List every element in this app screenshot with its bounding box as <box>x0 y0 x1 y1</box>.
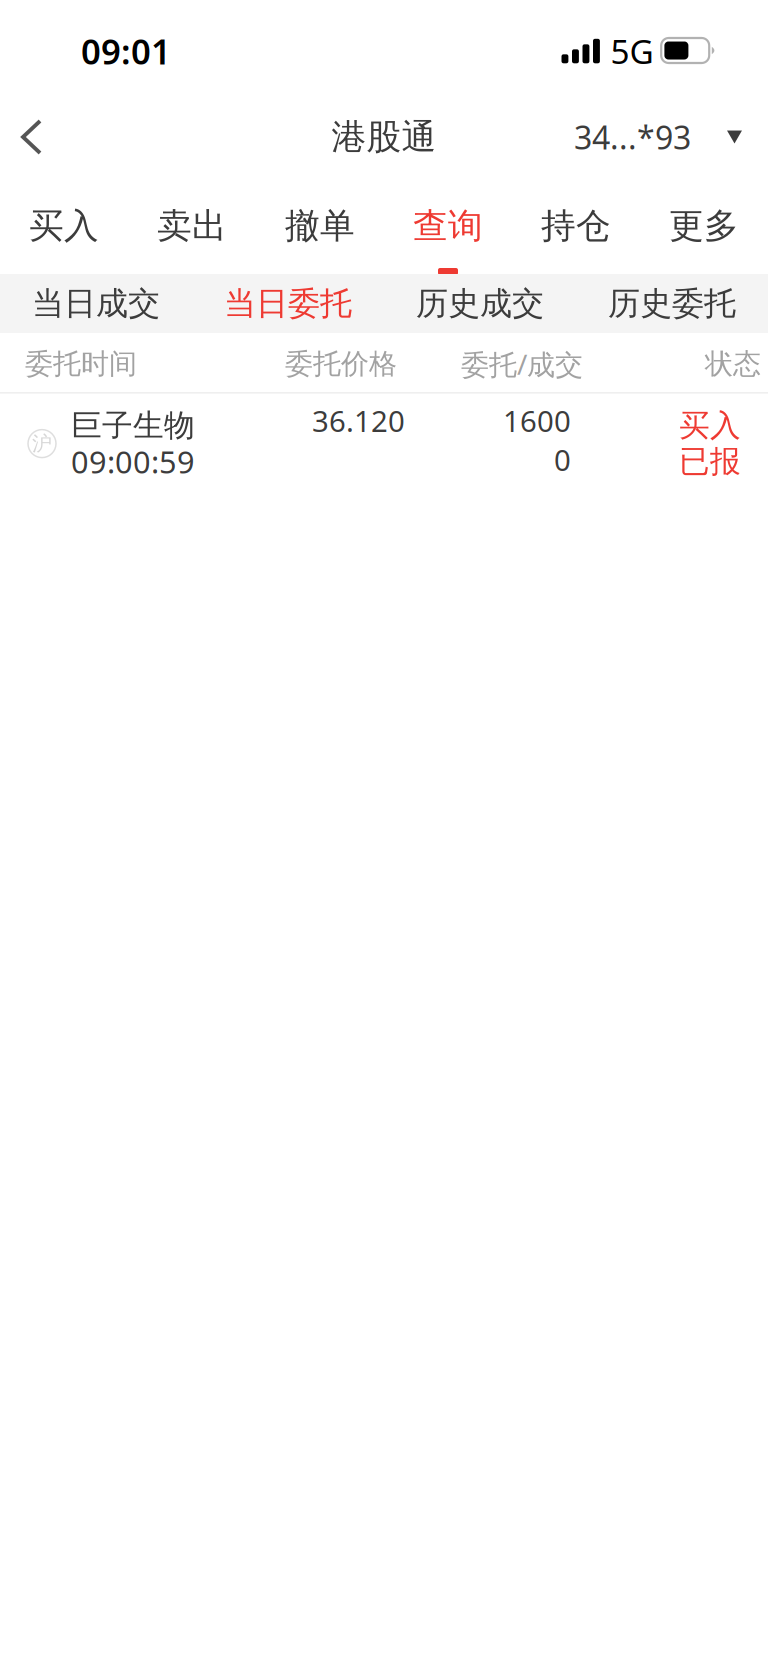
staticText: 巨子生物 <box>71 407 195 444</box>
button[interactable]: 返回 <box>3 106 77 168</box>
button[interactable]: 巨子生物 09:00:59 买入 已报 <box>0 394 768 502</box>
staticText: 历史成交 <box>416 284 544 323</box>
staticText: 已报 <box>679 443 741 480</box>
staticText: 34...*93 <box>574 116 691 158</box>
staticText: 委托价格 <box>285 347 397 381</box>
staticText: 1600 <box>503 401 571 440</box>
staticText: 09:00:59 <box>71 441 195 482</box>
staticText: 买入 <box>679 407 741 444</box>
button[interactable]: 撤单 <box>256 180 384 274</box>
staticText: 当日成交 <box>32 284 160 323</box>
button[interactable]: 查询 <box>384 180 512 274</box>
staticText: 委托时间 <box>25 347 137 381</box>
button[interactable]: 历史成交 <box>384 274 576 333</box>
staticText: 查询 <box>413 205 483 247</box>
staticText: 撤单 <box>285 205 355 247</box>
staticText: 09:01 <box>81 28 171 74</box>
staticText: 卖出 <box>157 205 227 247</box>
staticText: 36.120 <box>312 401 405 440</box>
staticText: 当日委托 <box>224 284 352 323</box>
button[interactable]: 历史委托 <box>576 274 768 333</box>
button[interactable]: 更多 <box>640 180 768 274</box>
staticText: 状态 <box>705 347 761 381</box>
staticText: 委托/成交 <box>461 345 583 383</box>
button[interactable]: 当日成交 <box>0 274 192 333</box>
staticText: 5G <box>610 29 653 73</box>
button[interactable]: 卖出 <box>128 180 256 274</box>
staticText: 更多 <box>669 205 739 247</box>
staticText: 买入 <box>29 205 99 247</box>
button[interactable]: 34...*93 <box>574 102 742 172</box>
button[interactable]: 当日委托 <box>192 274 384 333</box>
button[interactable]: 买入 <box>0 180 128 274</box>
button[interactable]: 持仓 <box>512 180 640 274</box>
staticText: 港股通 <box>331 116 436 158</box>
staticText: 持仓 <box>541 205 611 247</box>
staticText: 沪 <box>32 431 52 456</box>
staticText: 0 <box>554 440 571 479</box>
staticText: 历史委托 <box>608 284 736 323</box>
